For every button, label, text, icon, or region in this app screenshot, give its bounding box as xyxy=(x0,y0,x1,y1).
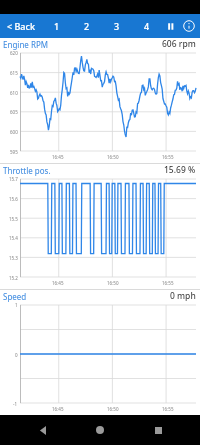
button[interactable]: 3 xyxy=(102,14,132,38)
staticText: 606 rpm xyxy=(162,38,196,50)
staticText: 3 xyxy=(114,20,120,32)
staticText: 16:55 xyxy=(162,154,174,160)
button[interactable]: Home xyxy=(85,415,115,445)
staticText: 4 xyxy=(144,20,150,32)
staticText: 1 xyxy=(15,302,18,307)
staticText: 15.4 xyxy=(9,235,18,240)
staticText: 16:45 xyxy=(52,406,64,412)
staticText: 16:50 xyxy=(107,406,119,412)
staticText: 1 xyxy=(54,20,60,32)
button[interactable]: Info xyxy=(179,14,198,38)
button[interactable]: < Back xyxy=(0,14,42,38)
staticText: -1 xyxy=(13,401,18,406)
button[interactable]: 4 xyxy=(132,14,162,38)
staticText: 16:45 xyxy=(52,154,64,160)
staticText: 15.69 % xyxy=(164,164,196,176)
staticText: 610 xyxy=(10,90,18,95)
staticText: 620 xyxy=(10,50,18,55)
staticText: < Back xyxy=(7,20,35,32)
staticText: 15.5 xyxy=(9,216,18,221)
button[interactable]: Recent apps xyxy=(143,415,173,445)
staticText: 0 mph xyxy=(170,290,196,302)
staticText: 600 xyxy=(10,129,18,134)
staticText: 16:45 xyxy=(52,280,64,286)
button[interactable]: 2 xyxy=(72,14,102,38)
staticText: Engine RPM xyxy=(3,39,48,50)
staticText: 2 xyxy=(84,20,90,32)
staticText: 0 xyxy=(15,352,18,357)
staticText: 16:50 xyxy=(107,280,119,286)
staticText: 15.6 xyxy=(9,196,18,201)
button[interactable]: 1 xyxy=(42,14,72,38)
staticText: 15.7 xyxy=(9,176,18,181)
staticText: 615 xyxy=(10,70,18,75)
staticText: 595 xyxy=(10,149,18,154)
staticText: 605 xyxy=(10,109,18,114)
button[interactable]: Pause xyxy=(162,14,179,38)
staticText: 15.2 xyxy=(9,275,18,280)
staticText: 16:55 xyxy=(162,406,174,412)
staticText: Speed xyxy=(3,291,27,302)
staticText: 16:55 xyxy=(162,280,174,286)
staticText: 16:50 xyxy=(107,154,119,160)
staticText: Throttle pos. xyxy=(3,165,51,176)
button[interactable]: Back xyxy=(28,415,58,445)
staticText: 15.3 xyxy=(9,255,18,260)
